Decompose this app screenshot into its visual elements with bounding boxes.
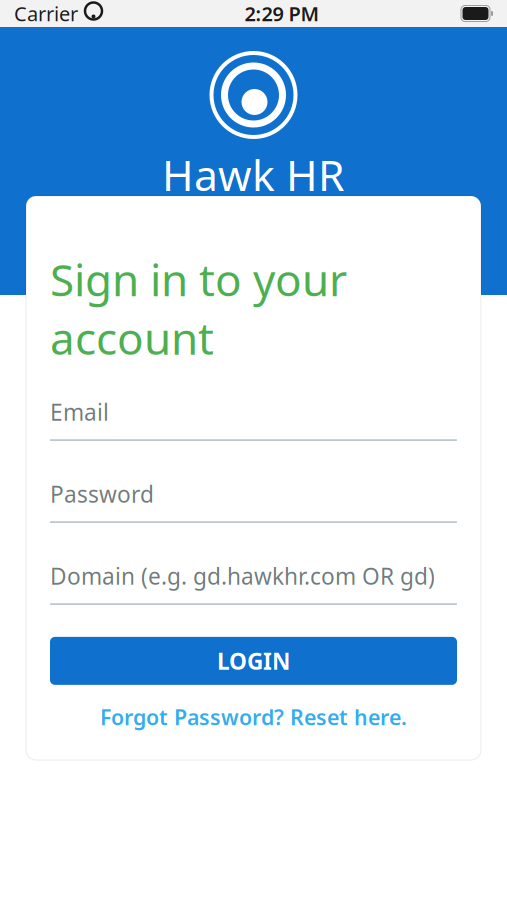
staticText: Domain (e.g. gd.hawkhr.com OR gd) bbox=[50, 561, 435, 591]
staticText: Hawk HR bbox=[162, 146, 345, 203]
staticText: LOGIN bbox=[217, 646, 290, 676]
staticText: 2:29 PM bbox=[244, 0, 319, 27]
staticText: Carrier bbox=[14, 0, 78, 27]
button[interactable]: Password bbox=[50, 481, 457, 523]
staticText: Email bbox=[50, 397, 109, 427]
button[interactable]: LOGIN bbox=[50, 637, 457, 685]
button[interactable]: Email bbox=[50, 399, 457, 441]
staticText: Forgot Password? Reset here. bbox=[100, 703, 407, 731]
staticText: Password bbox=[50, 479, 154, 509]
button[interactable]: Domain (e.g. gd.hawkhr.com OR gd) bbox=[50, 563, 457, 605]
button[interactable]: Forgot Password? Reset here. bbox=[50, 695, 457, 739]
staticText: Sign in to your account bbox=[50, 250, 347, 367]
